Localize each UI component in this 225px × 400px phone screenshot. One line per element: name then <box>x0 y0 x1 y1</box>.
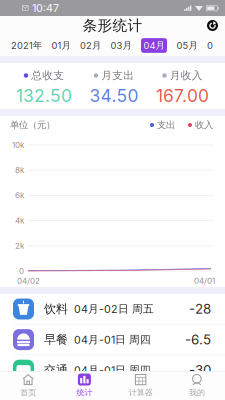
staticText: 132.50 <box>16 85 72 106</box>
staticText: -6.5 <box>185 331 211 348</box>
button[interactable]: 饮料 <box>0 294 225 324</box>
button[interactable]: 02月 <box>80 40 101 51</box>
button[interactable]: 01月 <box>51 40 70 51</box>
staticText: 2k <box>15 241 24 251</box>
staticText: 总收支 <box>31 69 64 82</box>
button[interactable]: 交通 <box>0 355 225 385</box>
staticText: 收入 <box>195 119 213 131</box>
button[interactable]: 04月 <box>141 38 167 53</box>
staticText: 早餐 <box>44 332 68 347</box>
staticText: 2021年 <box>11 40 42 51</box>
staticText: 我的 <box>189 388 205 398</box>
staticText: 04/01 <box>194 276 215 286</box>
staticText: 0 <box>19 266 24 276</box>
staticText: 01月 <box>51 40 70 51</box>
staticText: 统计 <box>76 388 92 398</box>
staticText: 04月-01日 周四 <box>74 333 151 346</box>
staticText: 04/02 <box>17 276 40 286</box>
staticText: 首页 <box>20 388 36 398</box>
staticText: -30 <box>189 362 211 378</box>
staticText: 4k <box>15 216 24 225</box>
staticText: 34.50 <box>89 85 138 106</box>
staticText: 交通 <box>44 363 68 378</box>
button[interactable]: 我的 <box>169 372 225 400</box>
button[interactable]: 03月 <box>110 40 131 51</box>
staticText: 条形统计 <box>82 16 142 35</box>
staticText: 计算器 <box>129 388 153 398</box>
staticText: 月支出 <box>101 69 134 82</box>
button[interactable]: 早餐 <box>0 325 225 355</box>
button[interactable]: 统计 <box>56 372 112 400</box>
button[interactable]: 0 <box>207 40 213 51</box>
staticText: 04月 <box>143 40 164 51</box>
staticText: 05月 <box>176 40 197 51</box>
staticText: 单位（元） <box>10 119 55 131</box>
staticText: -28 <box>189 301 211 317</box>
staticText: 10k <box>12 140 24 150</box>
staticText: 03月 <box>110 40 131 51</box>
button[interactable]: 首页 <box>0 372 56 400</box>
staticText: 167.00 <box>156 85 209 106</box>
staticText: 10:47 <box>32 1 59 14</box>
staticText: 8k <box>15 165 24 175</box>
staticText: 饮料 <box>44 301 68 316</box>
button[interactable]: Refresh <box>207 17 225 34</box>
staticText: 支出 <box>157 119 175 131</box>
staticText: 02月 <box>80 40 101 51</box>
button[interactable]: 2021年 <box>11 40 42 51</box>
staticText: 04月-01日 周四 <box>74 363 151 377</box>
button[interactable]: 05月 <box>176 40 197 51</box>
staticText: 6k <box>15 191 24 200</box>
staticText: 04月-02日 周五 <box>74 302 154 316</box>
staticText: 月收入 <box>170 69 203 82</box>
staticText: 0 <box>207 40 213 51</box>
button[interactable]: 计算器 <box>112 372 169 400</box>
